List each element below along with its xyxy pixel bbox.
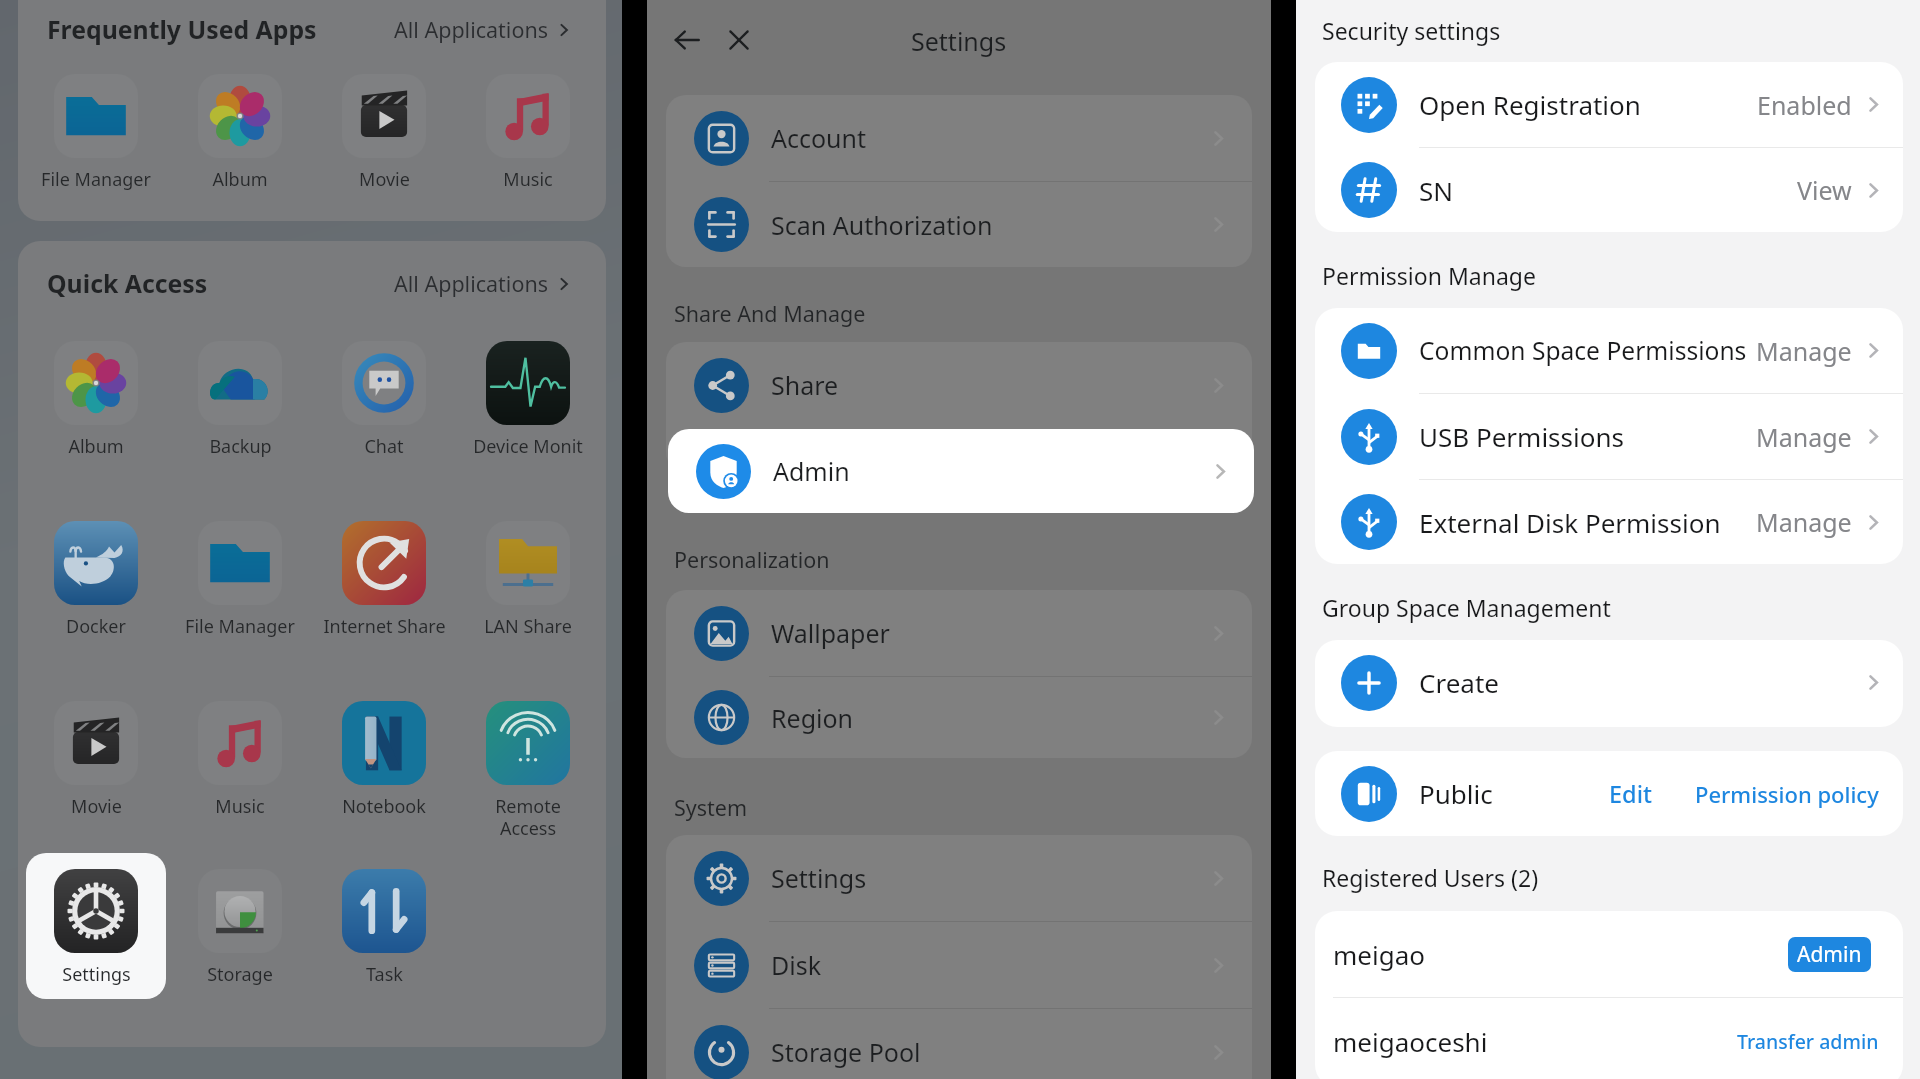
staticText: Scan Authorization [771, 208, 993, 242]
staticText: Permission policy [1695, 779, 1879, 809]
button[interactable]: Music [458, 58, 598, 204]
button[interactable]: Settings [666, 835, 1252, 921]
staticText: Share And Manage [674, 299, 866, 328]
button[interactable]: File Manager [26, 58, 166, 204]
staticText: Personalization [674, 545, 830, 574]
staticText: All Applications [394, 269, 548, 298]
button[interactable]: Scan Authorization [666, 182, 1252, 267]
staticText: Movie [359, 167, 410, 192]
button[interactable]: Movie [314, 58, 454, 204]
button[interactable]: Internet Share [314, 505, 454, 651]
staticText: Quick Access [47, 266, 208, 300]
staticText: System [674, 793, 748, 822]
staticText: Device Monit [473, 434, 583, 459]
staticText: Storage Pool [771, 1035, 921, 1069]
button[interactable]: Storage Pool [666, 1009, 1252, 1079]
staticText: Album [212, 167, 268, 192]
button[interactable]: Task [314, 853, 454, 999]
staticText: Registered Users (2) [1322, 862, 1539, 893]
staticText: Backup [209, 434, 272, 459]
button[interactable]: Permission policy [1691, 771, 1883, 817]
staticText: Transfer admin [1737, 1028, 1879, 1055]
button[interactable]: Settings [26, 853, 166, 999]
button[interactable]: Album [26, 325, 166, 471]
staticText: External Disk Permission [1419, 505, 1721, 540]
staticText: Admin [1797, 940, 1862, 969]
staticText: Music [215, 794, 265, 819]
staticText: Common Space Permissions [1419, 334, 1747, 368]
staticText: Edit [1609, 778, 1653, 810]
staticText: Manage [1756, 505, 1852, 539]
button[interactable]: USB Permissions [1315, 394, 1903, 479]
staticText: Frequently Used Apps [47, 12, 317, 46]
staticText: Task [366, 962, 403, 987]
staticText: LAN Share [484, 614, 572, 639]
button[interactable]: Music [170, 685, 310, 831]
button[interactable]: Docker [26, 505, 166, 651]
staticText: Manage [1756, 334, 1852, 368]
button[interactable]: Chat [314, 325, 454, 471]
button[interactable]: Admin [1788, 937, 1871, 972]
staticText: Enabled [1757, 88, 1852, 122]
staticText: Storage [207, 962, 273, 987]
staticText: Movie [71, 794, 122, 819]
staticText: File Manager [185, 614, 295, 639]
staticText: View [1797, 173, 1852, 207]
staticText: File Manager [41, 167, 151, 192]
button[interactable]: Movie [26, 685, 166, 831]
staticText: Share [771, 368, 839, 402]
staticText: Account [771, 121, 867, 155]
button[interactable]: Notebook [314, 685, 454, 831]
staticText: Chat [364, 434, 404, 459]
staticText: Album [68, 434, 124, 459]
button[interactable]: Device Monit [458, 325, 598, 471]
button[interactable]: Disk [666, 922, 1252, 1008]
staticText: meigaoceshi [1333, 1024, 1488, 1059]
button[interactable]: External Disk Permission [1315, 480, 1903, 564]
staticText: USB Permissions [1419, 419, 1624, 454]
staticText: Manage [1756, 420, 1852, 454]
staticText: Admin [773, 454, 850, 488]
button[interactable]: SN [1315, 148, 1903, 232]
button[interactable]: Back [669, 22, 705, 58]
button[interactable]: Transfer admin [1733, 1020, 1883, 1063]
button[interactable]: File Manager [170, 505, 310, 651]
staticText: SN [1419, 173, 1454, 208]
staticText: Region [771, 701, 854, 735]
button[interactable]: Admin [668, 429, 1254, 513]
button[interactable]: Create [1315, 640, 1903, 725]
button[interactable]: All Applications [390, 263, 576, 304]
button[interactable]: Open Registration [1315, 62, 1903, 147]
staticText: Settings [911, 24, 1007, 58]
button[interactable]: Remote Access [458, 685, 598, 852]
button[interactable]: All Applications [390, 9, 576, 50]
button[interactable]: Region [666, 677, 1252, 758]
staticText: Wallpaper [771, 616, 890, 650]
staticText: Disk [771, 948, 822, 982]
button[interactable]: Edit [1599, 770, 1663, 818]
staticText: Remote Access [495, 794, 561, 840]
staticText: Internet Share [323, 614, 446, 639]
staticText: Open Registration [1419, 87, 1641, 122]
staticText: Permission Manage [1322, 260, 1536, 291]
staticText: Security settings [1322, 15, 1501, 46]
staticText: Group Space Management [1322, 592, 1611, 623]
staticText: Notebook [342, 794, 426, 819]
staticText: Create [1419, 665, 1499, 700]
staticText: All Applications [394, 15, 548, 44]
button[interactable]: Wallpaper [666, 590, 1252, 676]
staticText: Docker [66, 614, 126, 639]
staticText: meigao [1333, 937, 1425, 972]
staticText: Settings [771, 861, 867, 895]
button[interactable]: Account [666, 95, 1252, 181]
button[interactable]: Common Space Permissions [1315, 308, 1903, 393]
staticText: Settings [62, 962, 131, 987]
staticText: Music [503, 167, 553, 192]
button[interactable]: Backup [170, 325, 310, 471]
button[interactable]: LAN Share [458, 505, 598, 651]
button[interactable]: Close [721, 22, 757, 58]
button[interactable]: Storage [170, 853, 310, 999]
button[interactable]: Album [170, 58, 310, 204]
button[interactable]: Share [666, 342, 1252, 428]
staticText: Public [1419, 776, 1493, 811]
